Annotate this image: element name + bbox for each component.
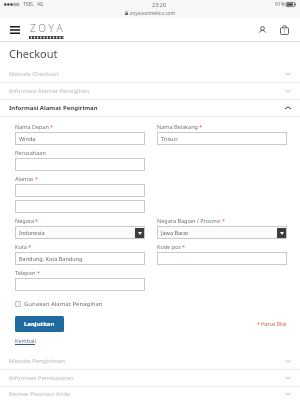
staticText: zoyacosmetics.com xyxy=(130,10,176,17)
staticText: * xyxy=(35,217,39,224)
staticText: 1 xyxy=(283,28,286,34)
staticText: 4G xyxy=(37,1,44,8)
staticText: * xyxy=(182,243,186,250)
staticText: 91% xyxy=(275,1,285,8)
staticText: Lanjutkan xyxy=(24,320,55,328)
staticText: Metode Checkout xyxy=(9,70,59,78)
button[interactable]: Menu xyxy=(8,23,22,37)
staticText: * xyxy=(37,269,41,276)
button[interactable] xyxy=(15,278,145,291)
staticText: * xyxy=(50,123,54,130)
staticText: Metode Pengiriman xyxy=(9,357,65,365)
button[interactable]: Gunakan Alamat Penagihan xyxy=(15,300,107,308)
staticText: Negara Bagian / Provinsi xyxy=(157,217,221,224)
button[interactable]: Bandung, Kota Bandung xyxy=(15,252,145,265)
staticText: * xyxy=(222,217,226,224)
staticText: * xyxy=(28,243,32,250)
staticText: Negara xyxy=(15,217,34,224)
staticText: Telepon xyxy=(15,269,36,276)
staticText: Kode pos xyxy=(157,243,181,250)
staticText: TSEL xyxy=(23,1,34,8)
button[interactable]: Indonesia xyxy=(15,226,145,239)
staticText: Jawa Barat xyxy=(161,229,189,236)
button[interactable] xyxy=(15,200,145,213)
button[interactable]: Informasi Pembayaran xyxy=(0,370,300,387)
button[interactable]: Jawa Barat xyxy=(157,226,287,239)
staticText: Informasi Alamat Pengiriman xyxy=(9,104,98,112)
button[interactable]: Kembali xyxy=(15,337,36,345)
button[interactable]: Metode Checkout xyxy=(0,66,300,83)
staticText: Gunakan Alamat Penagihan xyxy=(24,300,103,308)
staticText: Alamat xyxy=(15,175,34,182)
staticText: Checkout xyxy=(9,46,58,61)
staticText: Perusahaan xyxy=(15,149,46,156)
staticText: Z O Y A xyxy=(30,21,63,35)
staticText: * xyxy=(199,123,203,130)
staticText: * Harus Diisi xyxy=(257,321,287,328)
staticText: Review Pesanan Anda xyxy=(9,390,71,398)
button[interactable]: Review Pesanan Anda xyxy=(0,387,300,400)
button[interactable]: Winda xyxy=(15,132,145,145)
staticText: 23:20 xyxy=(152,1,167,8)
button[interactable]: Lanjutkan xyxy=(15,316,64,332)
button[interactable]: Metode Pengiriman xyxy=(0,353,300,370)
staticText: Indonesia xyxy=(19,229,45,236)
staticText: Trisuci xyxy=(161,135,178,142)
button[interactable]: Informasi Alamat Pengiriman xyxy=(0,100,300,117)
button[interactable] xyxy=(15,158,145,171)
staticText: Nama Depan xyxy=(15,123,49,130)
staticText: Winda xyxy=(19,135,36,142)
button[interactable]: Account xyxy=(254,22,270,38)
staticText: Informasi Alamat Penagihan xyxy=(9,87,90,95)
button[interactable] xyxy=(15,184,145,197)
button[interactable] xyxy=(157,252,287,265)
button[interactable]: Trisuci xyxy=(157,132,287,145)
staticText: Kembali xyxy=(15,337,36,344)
staticText: Informasi Pembayaran xyxy=(9,374,74,382)
button[interactable]: Informasi Alamat Penagihan xyxy=(0,83,300,100)
button[interactable]: Shopping bag, 1 item xyxy=(276,22,292,38)
staticText: Nama Belakang xyxy=(157,123,198,130)
staticText: * xyxy=(35,175,39,182)
staticText: Bandung, Kota Bandung xyxy=(19,255,83,262)
staticText: Kota xyxy=(15,243,27,250)
